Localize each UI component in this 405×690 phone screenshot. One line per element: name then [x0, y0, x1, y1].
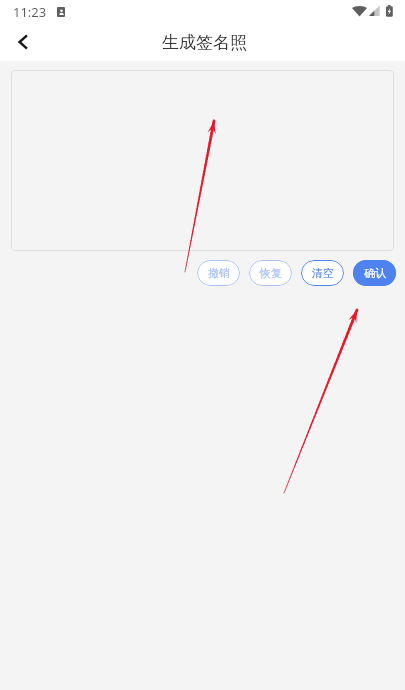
button[interactable]: 确认 [353, 260, 396, 286]
button[interactable]: 恢复 [249, 260, 292, 286]
staticText: 撤销 [208, 266, 230, 280]
staticText: 11:23 [13, 3, 47, 21]
button[interactable]: 撤销 [197, 260, 240, 286]
staticText: 确认 [364, 266, 386, 280]
button[interactable]: Signature drawing area [11, 70, 394, 251]
staticText: 恢复 [260, 266, 282, 280]
staticText: 清空 [312, 266, 334, 280]
button[interactable]: Back [5, 25, 41, 59]
staticText: 生成签名照 [162, 32, 247, 53]
button[interactable]: 清空 [301, 260, 344, 286]
